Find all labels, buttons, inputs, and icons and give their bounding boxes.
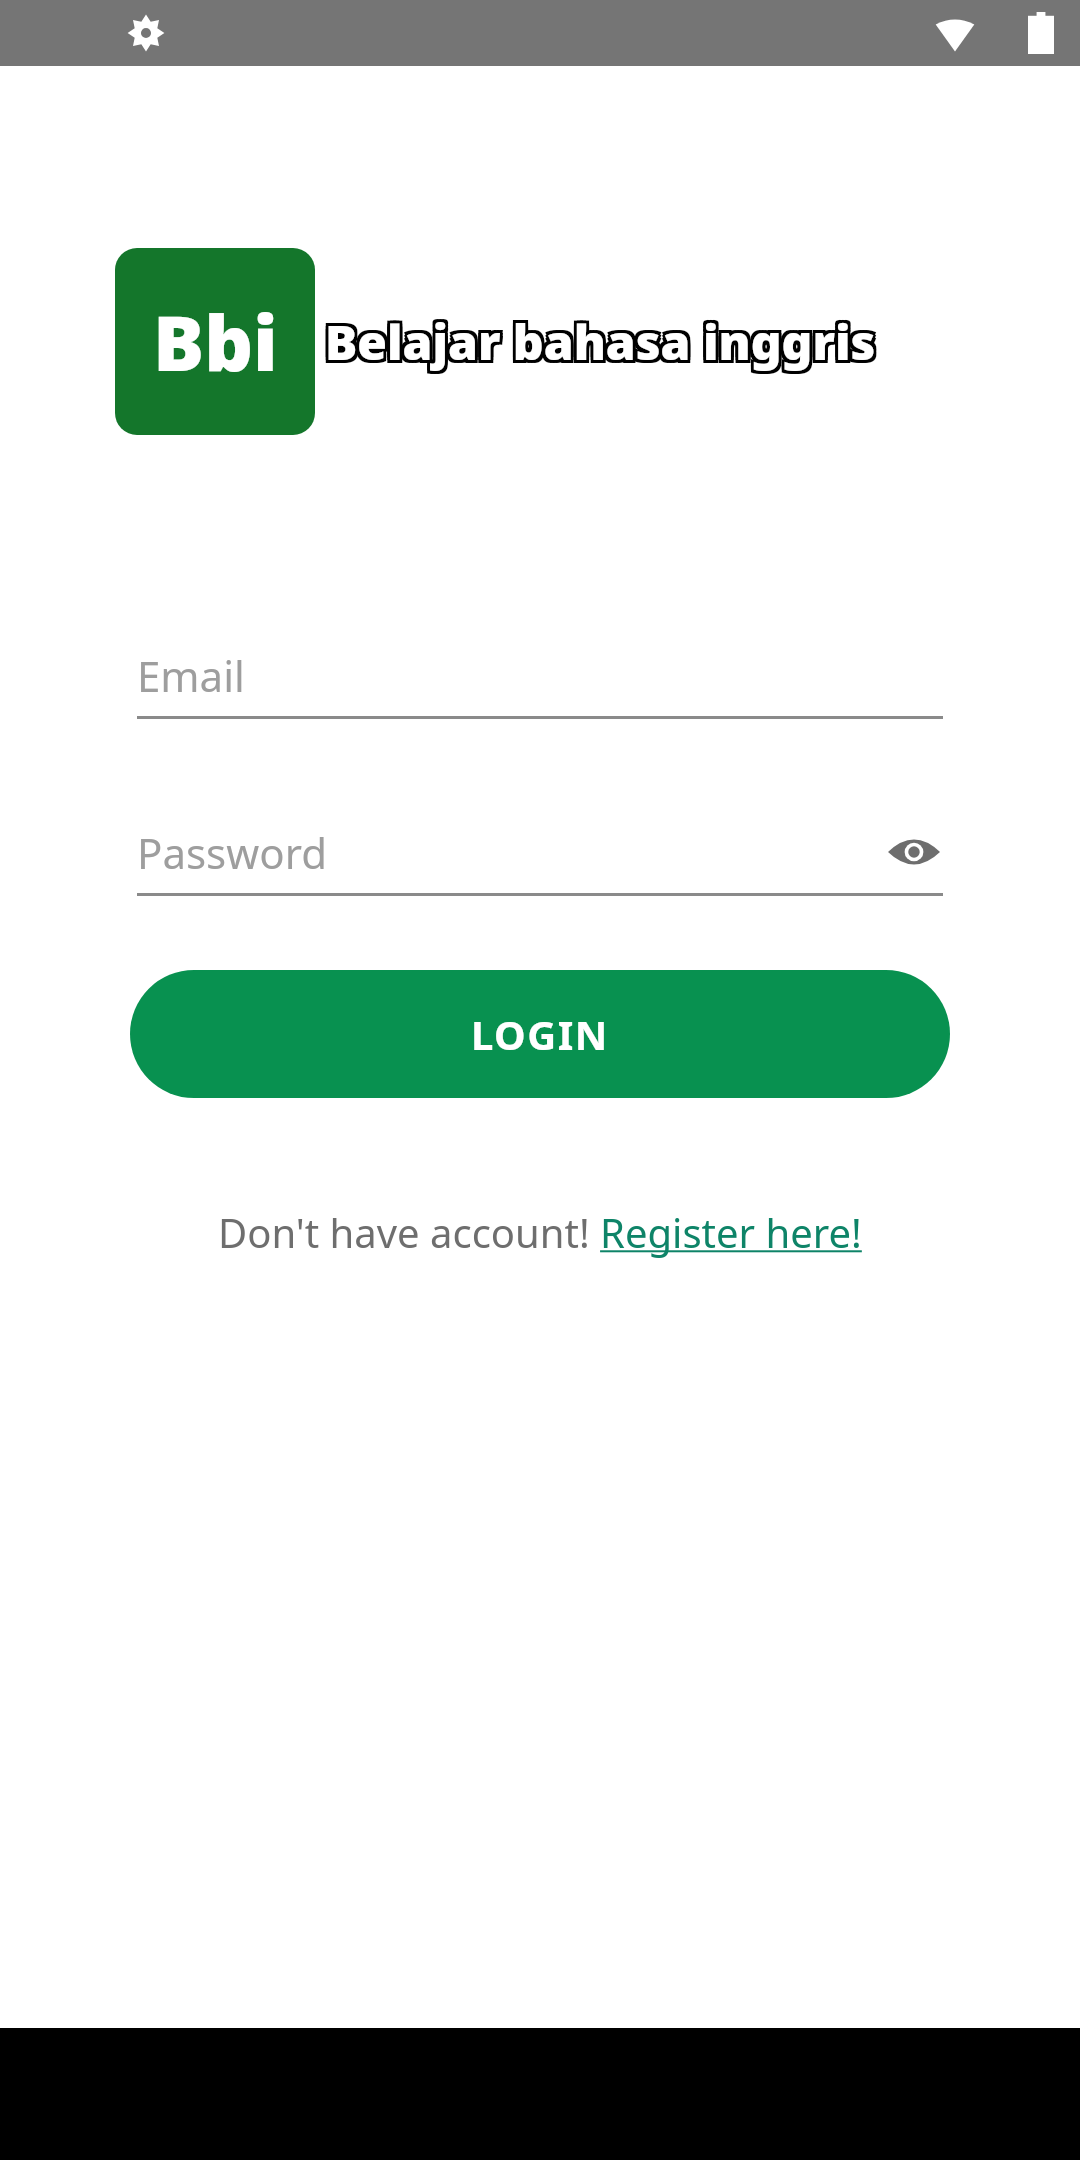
staticText: Belajar bahasa inggris	[322, 309, 873, 374]
staticText: Email	[137, 647, 245, 704]
staticText: Belajar bahasa inggris	[328, 306, 879, 371]
button[interactable]: LOGIN	[130, 970, 950, 1098]
button[interactable]: Password	[137, 817, 943, 896]
other: Wi-Fi	[934, 12, 976, 54]
staticText: Don't have account! Register here!	[218, 1205, 862, 1259]
staticText: Belajar bahasa inggris	[328, 312, 879, 377]
staticText: Belajar bahasa inggris	[322, 312, 873, 377]
other: Battery	[1028, 12, 1054, 54]
staticText: Belajar bahasa inggris	[325, 309, 876, 374]
staticText: Bbi	[153, 290, 278, 394]
staticText: Belajar bahasa inggris	[322, 306, 873, 371]
staticText: LOGIN	[471, 1007, 609, 1061]
button[interactable]: Email	[137, 640, 943, 719]
staticText: Password	[137, 824, 327, 881]
button[interactable]: Toggle password visibility	[885, 823, 943, 881]
staticText: Belajar bahasa inggris	[328, 309, 879, 374]
staticText: Belajar bahasa inggris	[325, 312, 876, 377]
staticText: Belajar bahasa inggris	[325, 306, 876, 371]
other: Settings	[126, 13, 166, 53]
button[interactable]: Don't have account! Register here!	[210, 1201, 870, 1263]
